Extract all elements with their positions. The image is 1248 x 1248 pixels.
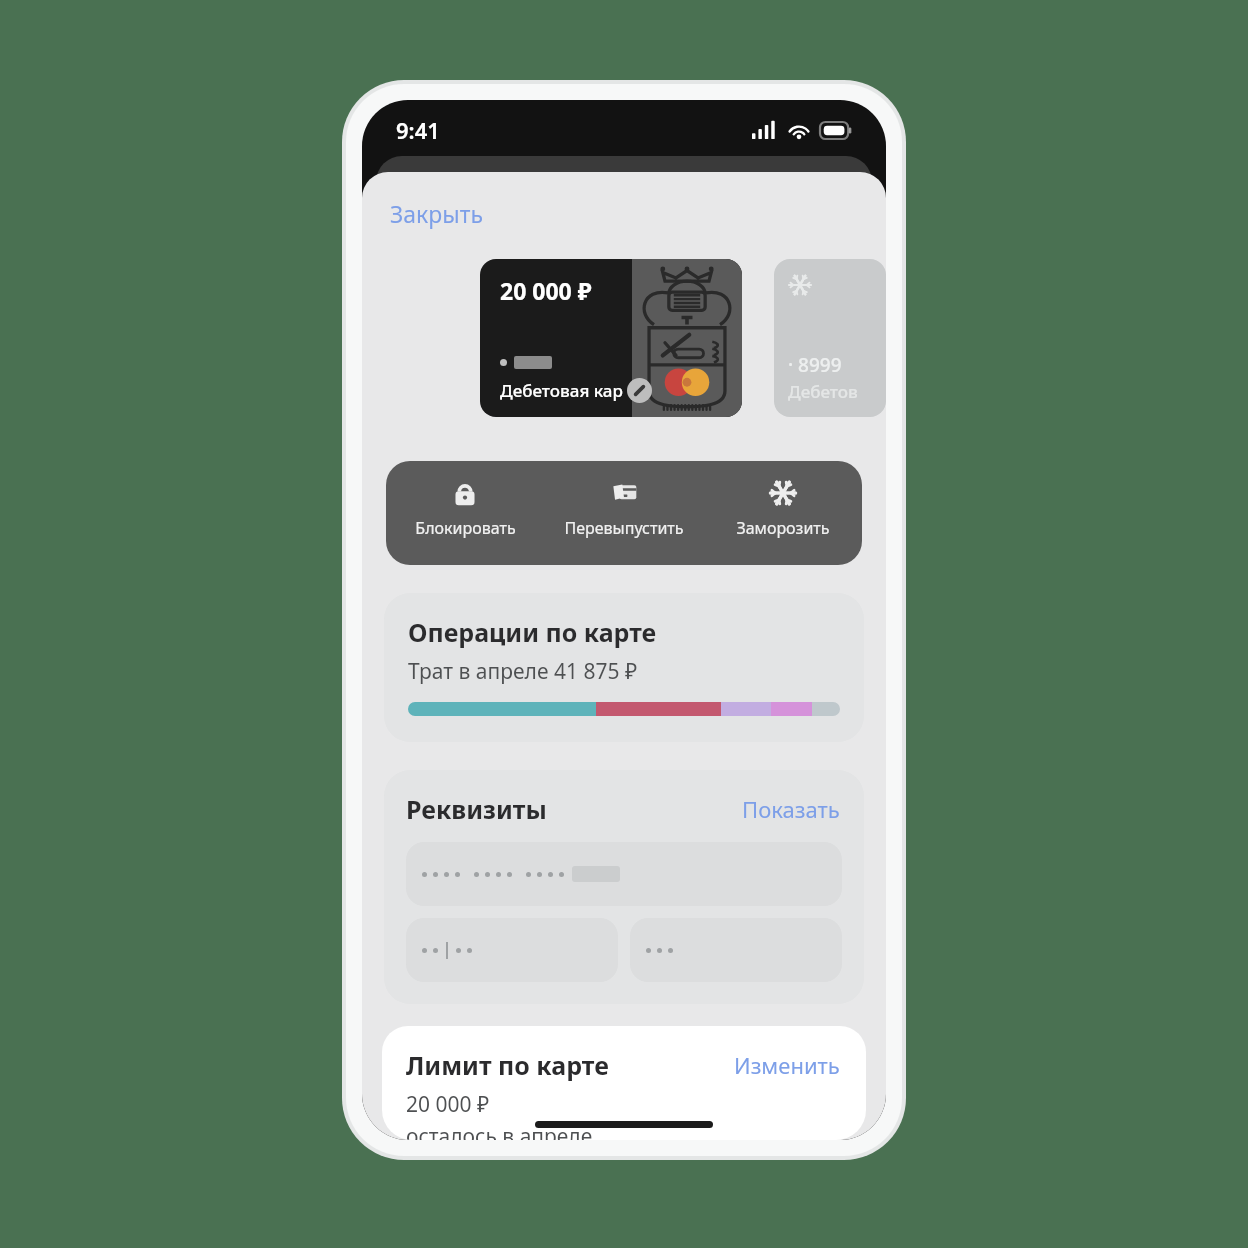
staticText: Блокировать xyxy=(415,517,516,539)
staticText: Изменить xyxy=(734,1050,840,1080)
staticText: осталось в апреле xyxy=(406,1122,593,1140)
staticText: Заморозить xyxy=(736,517,830,539)
button[interactable]: Заморозить xyxy=(703,461,862,565)
button[interactable]: · 8999 xyxy=(774,259,886,417)
staticText: 20 000 ₽ xyxy=(406,1090,490,1119)
button[interactable] xyxy=(630,918,842,982)
staticText: Дебетовая кар xyxy=(500,379,623,402)
staticText: Перевыпустить xyxy=(564,517,684,539)
button[interactable]: Редактировать xyxy=(627,378,652,403)
button[interactable] xyxy=(406,918,618,982)
button[interactable]: Показать xyxy=(740,792,842,826)
button[interactable]: Блокировать xyxy=(386,461,544,565)
button[interactable]: 20 000 ₽ xyxy=(480,259,742,417)
staticText: Реквизиты xyxy=(406,792,547,826)
staticText: Показать xyxy=(742,794,840,824)
staticText: Дебетов xyxy=(788,380,858,403)
staticText: 20 000 ₽ xyxy=(500,275,592,306)
staticText: Операции по карте xyxy=(408,615,657,649)
button[interactable]: Изменить xyxy=(732,1048,842,1082)
staticText: Закрыть xyxy=(390,198,483,229)
button[interactable]: Закрыть xyxy=(388,196,485,231)
staticText: Лимит по карте xyxy=(406,1048,609,1082)
staticText: · 8999 xyxy=(788,352,842,378)
button[interactable]: Перевыпустить xyxy=(544,461,703,565)
button[interactable] xyxy=(406,842,842,906)
button[interactable]: Операции по карте xyxy=(384,593,864,742)
staticText: Трат в апреле 41 875 ₽ xyxy=(408,657,638,686)
staticText: 9:41 xyxy=(396,115,440,145)
